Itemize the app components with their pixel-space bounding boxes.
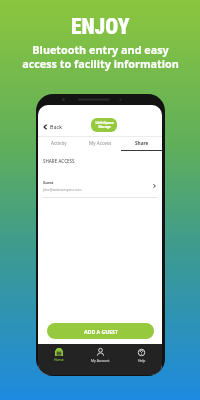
- button[interactable]: Back: [38, 120, 67, 134]
- staticText: LittleSpace Storage: [95, 121, 114, 129]
- button[interactable]: My Access: [80, 137, 121, 151]
- button[interactable]: Home: [38, 344, 80, 375]
- staticText: My Account: [91, 358, 110, 363]
- button[interactable]: LittleSpace Storage: [91, 118, 117, 132]
- staticText: Help: [138, 358, 146, 363]
- staticText: Home: [54, 357, 64, 362]
- button[interactable]: My Account: [80, 344, 121, 375]
- button[interactable]: ADD A GUEST: [47, 323, 154, 339]
- staticText: Activity: [51, 140, 67, 146]
- button[interactable]: Help: [121, 344, 162, 375]
- staticText: Share: [135, 140, 149, 146]
- staticText: Guest: [43, 180, 54, 185]
- staticText: Bluetooth entry and easy access to facil…: [22, 42, 179, 71]
- staticText: Back: [50, 124, 63, 130]
- staticText: ENJOY: [71, 14, 130, 39]
- button[interactable]: Guest: [38, 175, 162, 196]
- button[interactable]: Activity: [38, 137, 80, 151]
- staticText: jdoe@webstorspace.com: [43, 187, 82, 191]
- button[interactable]: Share: [121, 137, 162, 151]
- staticText: My Access: [89, 140, 112, 146]
- staticText: ADD A GUEST: [84, 328, 118, 335]
- staticText: SHARE ACCESS: [43, 158, 75, 164]
